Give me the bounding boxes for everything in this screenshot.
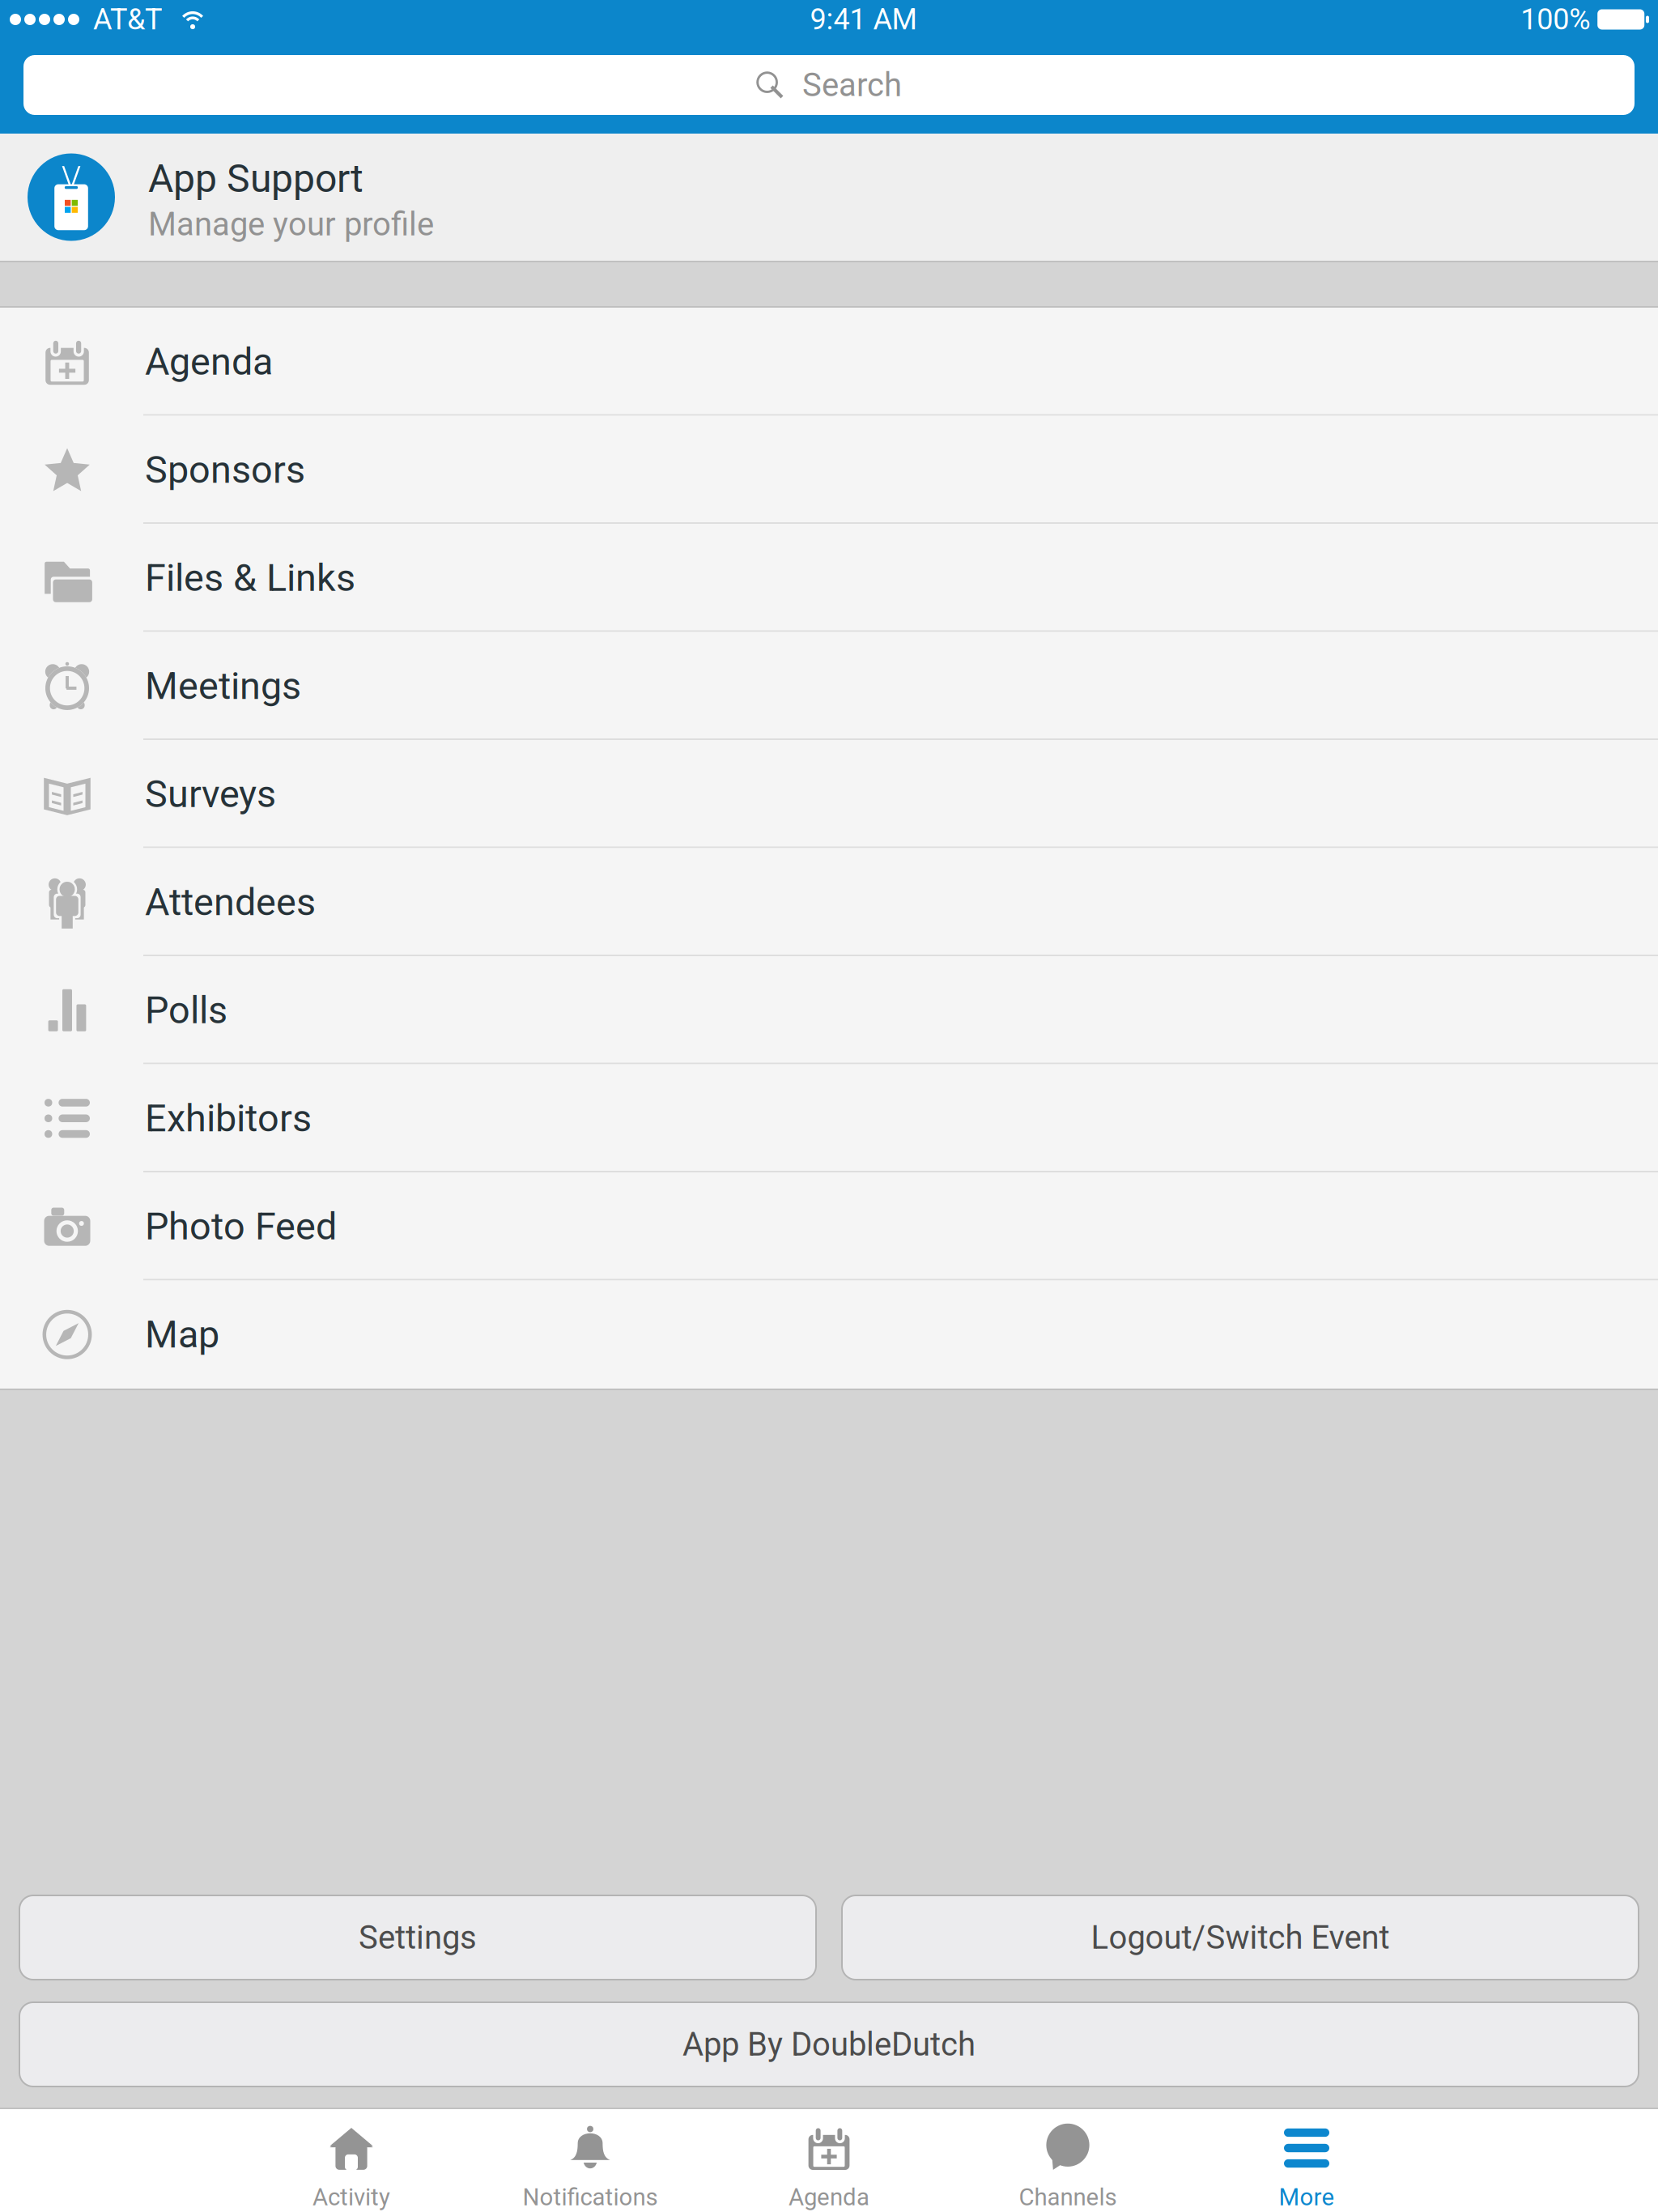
staticText: 100% [1521,2,1590,37]
staticText: 9:41 AM [810,2,917,37]
staticText: Notifications [523,2183,658,2211]
button[interactable]: Sponsors [0,416,1658,524]
staticText: App Support [148,156,363,201]
staticText: Surveys [145,772,276,816]
button[interactable]: Map [0,1280,1658,1389]
button[interactable]: Agenda [710,2109,948,2212]
button[interactable]: Surveys [0,740,1658,848]
button[interactable]: Notifications [471,2109,710,2212]
staticText: Settings [359,1919,477,1957]
staticText: Manage your profile [148,205,434,243]
staticText: Polls [145,988,227,1032]
button[interactable]: Settings [19,1895,816,1980]
staticText: More [1279,2183,1335,2211]
staticText: Meetings [145,664,301,708]
button[interactable]: Activity [232,2109,471,2212]
staticText: Channels [1019,2183,1117,2211]
button[interactable]: Exhibitors [0,1064,1658,1172]
button[interactable]: Photo Feed [0,1172,1658,1280]
button[interactable]: Files & Links [0,524,1658,632]
button[interactable]: App Support [0,134,1658,261]
button[interactable]: Search [0,39,1658,134]
staticText: Agenda [145,340,273,384]
staticText: Logout/Switch Event [1091,1919,1390,1957]
staticText: Map [145,1312,219,1357]
staticText: Search [802,66,902,104]
button[interactable]: Polls [0,956,1658,1064]
button[interactable]: More [1187,2109,1426,2212]
button[interactable]: Meetings [0,632,1658,740]
staticText: Agenda [789,2183,869,2211]
staticText: App By DoubleDutch [682,2025,976,2063]
staticText: Exhibitors [145,1096,312,1140]
staticText: AT&T [93,2,162,37]
button[interactable]: Logout/Switch Event [842,1895,1639,1980]
button[interactable]: Channels [948,2109,1187,2212]
staticText: Sponsors [145,448,305,492]
button[interactable]: Attendees [0,848,1658,956]
button[interactable]: App By DoubleDutch [19,2002,1639,2087]
staticText: Photo Feed [145,1204,337,1249]
staticText: Files & Links [145,556,355,600]
staticText: Attendees [145,880,316,924]
staticText: Activity [312,2183,390,2211]
button[interactable]: Agenda [0,308,1658,416]
